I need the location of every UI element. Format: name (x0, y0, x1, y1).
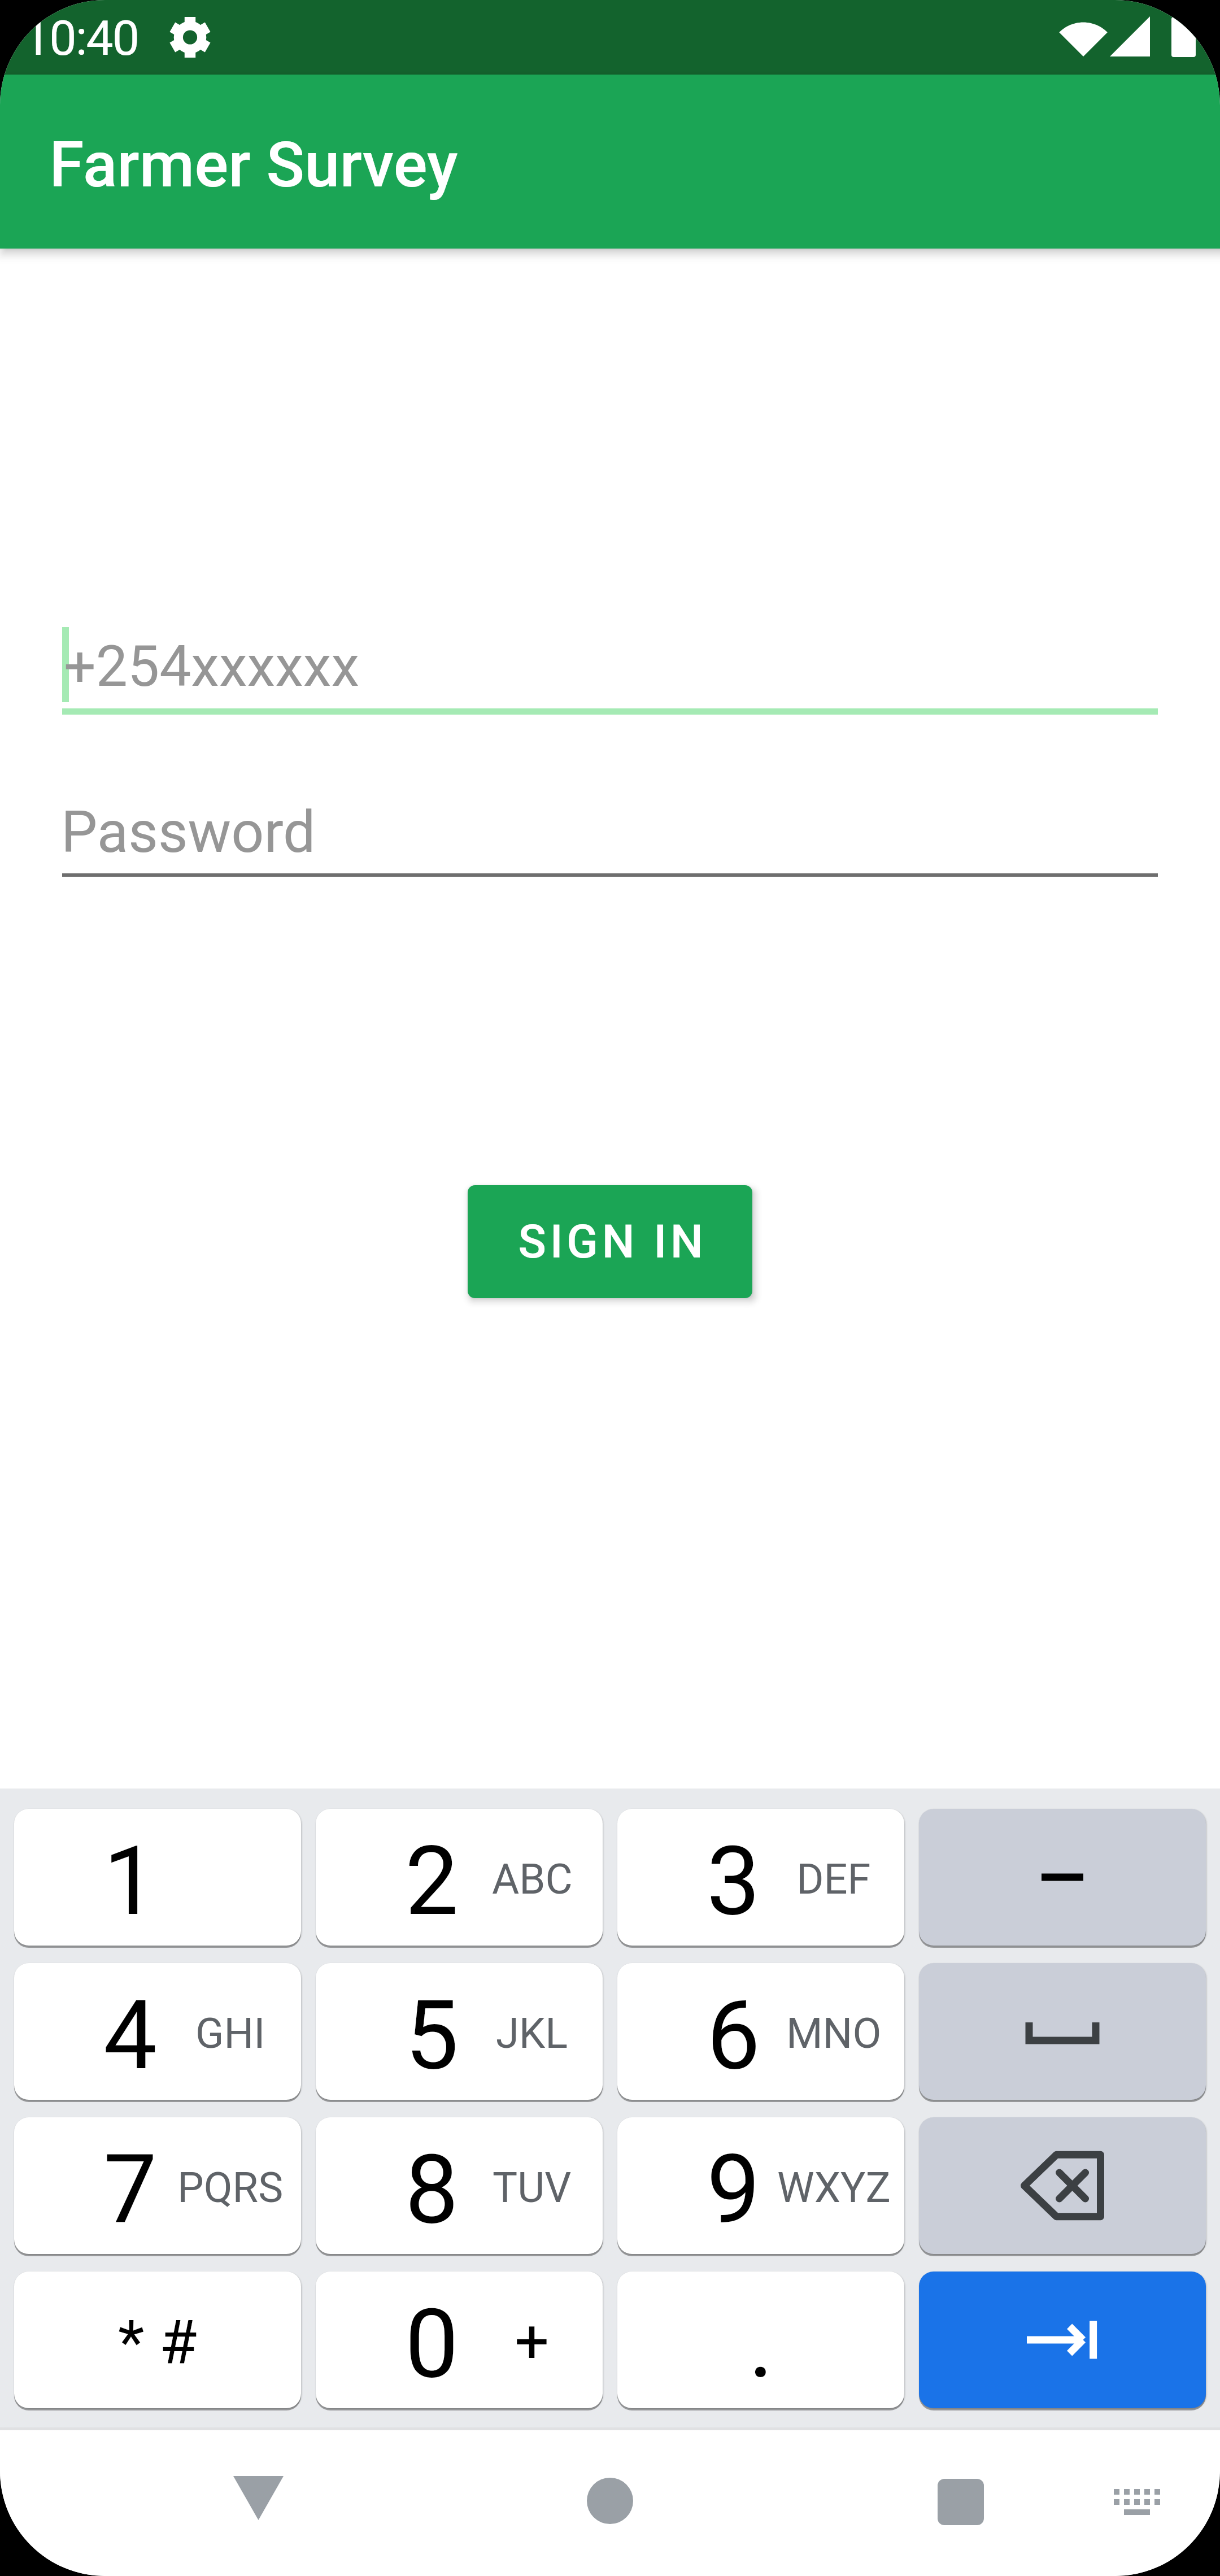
staticText: . (748, 2288, 774, 2400)
staticText: 9 (707, 2134, 760, 2246)
staticText: 8 (405, 2134, 459, 2246)
staticText: DEF (796, 1855, 871, 1904)
staticText: 4 (103, 1979, 157, 2091)
staticText: + (515, 2306, 550, 2378)
button[interactable]: * # (14, 2272, 301, 2408)
button[interactable]: Switch keyboard (1069, 2456, 1205, 2576)
staticText: WXYZ (777, 2163, 891, 2212)
button[interactable]: Backspace (919, 2117, 1206, 2254)
staticText: 10:40 (23, 10, 139, 67)
staticText: SIGN IN (518, 1215, 707, 1269)
staticText: 0 (405, 2288, 459, 2400)
staticText: 2 (405, 1825, 459, 1937)
staticText: TUV (493, 2163, 572, 2212)
staticText: GHI (195, 2009, 265, 2058)
staticText: Farmer Survey (49, 128, 458, 202)
button[interactable]: 5 (316, 1963, 603, 2100)
button[interactable]: 8 (316, 2117, 603, 2254)
staticText: PQRS (177, 2163, 284, 2212)
button[interactable]: Space (919, 1963, 1206, 2100)
staticText: JKL (496, 2009, 568, 2058)
staticText: MNO (786, 2009, 882, 2058)
button[interactable]: SIGN IN (468, 1185, 752, 1298)
button[interactable]: 3 (617, 1809, 904, 1946)
staticText: +254xxxxxx (64, 633, 359, 699)
button[interactable]: 4 (14, 1963, 301, 2100)
button[interactable]: +254xxxxxx (0, 604, 1220, 715)
button[interactable]: 0 (316, 2272, 603, 2408)
staticText: 6 (707, 1979, 760, 2091)
button[interactable]: Password (0, 771, 1220, 877)
button[interactable]: 9 (617, 2117, 904, 2254)
staticText: 3 (707, 1825, 760, 1937)
button[interactable]: Dash (919, 1809, 1206, 1946)
button[interactable]: 7 (14, 2117, 301, 2254)
button[interactable]: Next field (919, 2272, 1206, 2408)
button[interactable]: 1 (14, 1809, 301, 1946)
button[interactable]: . (617, 2272, 904, 2408)
button[interactable]: Back (190, 2456, 326, 2576)
button[interactable]: 6 (617, 1963, 904, 2100)
staticText: 5 (405, 1979, 459, 2091)
button[interactable]: Home (542, 2456, 678, 2576)
staticText: ABC (492, 1855, 573, 1904)
staticText: 7 (103, 2134, 157, 2246)
button[interactable]: 2 (316, 1809, 603, 1946)
staticText: Password (61, 798, 316, 866)
button[interactable]: Recent apps (893, 2456, 1029, 2576)
staticText: * # (118, 2307, 197, 2379)
other: Settings (171, 17, 210, 58)
staticText: 1 (103, 1825, 157, 1937)
